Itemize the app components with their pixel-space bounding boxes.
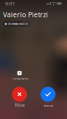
button[interactable]: Accetta (40, 87, 55, 107)
staticText: Rifiuta (15, 104, 24, 107)
staticText: Valerio Pietrzi (3, 10, 48, 19)
staticText: chiamata mobile (8, 22, 29, 26)
button[interactable]: Remind Me (11, 71, 27, 80)
staticText: 9:41 (5, 0, 15, 7)
button[interactable]: Rifiuta (12, 87, 27, 107)
staticText: Accetta (43, 104, 52, 107)
staticText: Promemoria (11, 77, 27, 80)
